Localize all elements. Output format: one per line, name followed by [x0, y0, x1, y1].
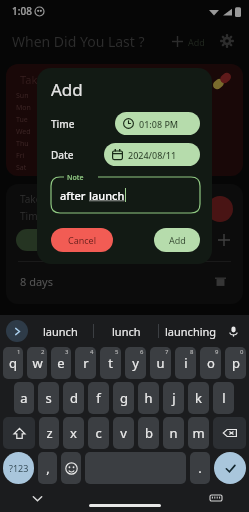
button[interactable]: Delete [211, 272, 229, 290]
button[interactable]: Hide keyboard [28, 489, 46, 507]
button[interactable]: z [39, 417, 59, 449]
button[interactable]: d [63, 382, 84, 414]
staticText: g [120, 389, 128, 407]
staticText: y [132, 354, 139, 372]
button[interactable]: Switch keyboard [207, 489, 225, 507]
button[interactable]: , [38, 452, 57, 484]
button[interactable]: b [138, 417, 159, 449]
staticText: Times [20, 209, 48, 223]
staticText: n [169, 424, 178, 442]
button[interactable]: Notifications [94, 229, 209, 251]
staticText: Mon [16, 103, 42, 113]
staticText: f [96, 389, 101, 407]
button[interactable]: i [175, 347, 196, 379]
button[interactable]: Edit [16, 229, 88, 251]
button[interactable]: Expand suggestions [6, 320, 28, 342]
staticText: m [192, 424, 205, 442]
button[interactable]: n [163, 417, 184, 449]
button[interactable]: x [63, 417, 84, 449]
staticText: 1:08 [12, 4, 32, 18]
button[interactable]: o [200, 347, 221, 379]
staticText: launch [43, 324, 78, 339]
button[interactable]: Add [169, 35, 207, 48]
button[interactable]: Add [154, 228, 200, 252]
button[interactable]: p [225, 347, 246, 379]
staticText: 2 [41, 348, 45, 356]
staticText: v [120, 424, 127, 442]
staticText: w [32, 354, 43, 372]
staticText: When Did You Last ? [12, 32, 145, 51]
button[interactable]: r [75, 347, 96, 379]
button[interactable]: f [88, 382, 109, 414]
button[interactable]: c [88, 417, 109, 449]
button[interactable]: Settings [217, 31, 237, 51]
button[interactable]: k [188, 382, 209, 414]
staticText: k [195, 389, 202, 407]
staticText: q [9, 354, 17, 372]
staticText: a [20, 389, 28, 407]
staticText: j [172, 389, 176, 407]
staticText: Sun [16, 91, 42, 101]
staticText: ?123 [9, 462, 29, 474]
button[interactable]: Add [215, 231, 233, 249]
staticText: 01:08 PM [139, 118, 179, 130]
staticText: z [46, 424, 53, 442]
staticText: Fri [16, 151, 42, 161]
button[interactable]: h [138, 382, 159, 414]
staticText: o [207, 354, 215, 372]
button[interactable]: q [3, 347, 23, 379]
button[interactable]: Voice input [223, 321, 243, 341]
staticText: , [46, 459, 50, 477]
button[interactable]: a [14, 382, 34, 414]
button[interactable]: . [190, 452, 210, 484]
staticText: Add [51, 78, 83, 101]
button[interactable]: ?123 [3, 452, 34, 484]
staticText: lunch [112, 324, 141, 339]
staticText: e [57, 354, 65, 372]
staticText: Taken [20, 72, 51, 87]
staticText: Add [188, 36, 205, 48]
button[interactable]: Cancel [51, 228, 113, 252]
staticText: Add [169, 234, 186, 246]
button[interactable]: Taken [6, 64, 243, 176]
staticText: Taken [20, 192, 48, 206]
staticText: d [70, 389, 78, 407]
staticText: Date [51, 148, 74, 162]
button[interactable]: launch [28, 315, 93, 347]
staticText: s [45, 389, 52, 407]
staticText: h [144, 389, 153, 407]
button[interactable]: Shift [3, 417, 35, 449]
button[interactable]: Emoji [61, 452, 81, 484]
button[interactable]: m [188, 417, 209, 449]
button[interactable]: 2024/08/11 [104, 143, 200, 166]
staticText: Time [51, 117, 75, 131]
button[interactable]: Enter [214, 452, 246, 484]
staticText: 4 [90, 348, 94, 356]
button[interactable]: 01:08 PM [115, 112, 200, 135]
staticText: 3 [65, 348, 69, 356]
button[interactable]: Backspace [213, 417, 246, 449]
staticText: launch [89, 188, 125, 203]
button[interactable]: u [150, 347, 171, 379]
staticText: c [95, 424, 102, 442]
staticText: Sat [16, 163, 42, 173]
button[interactable]: w [27, 347, 47, 379]
button[interactable]: g [113, 382, 134, 414]
button[interactable]: e [51, 347, 71, 379]
button[interactable]: v [113, 417, 134, 449]
button[interactable]: launching [159, 315, 223, 347]
staticText: x [70, 424, 77, 442]
button[interactable]: j [163, 382, 184, 414]
staticText: Note [67, 173, 84, 183]
button[interactable]: lunch [94, 315, 158, 347]
staticText: 0 [240, 348, 244, 356]
staticText: . [198, 459, 202, 477]
button[interactable]: y [125, 347, 146, 379]
button[interactable]: t [100, 347, 121, 379]
staticText: 2024/08/11 [128, 149, 177, 161]
staticText: after [60, 188, 89, 203]
button[interactable]: l [213, 382, 234, 414]
button[interactable]: s [38, 382, 59, 414]
staticText: Notifications [125, 234, 179, 246]
